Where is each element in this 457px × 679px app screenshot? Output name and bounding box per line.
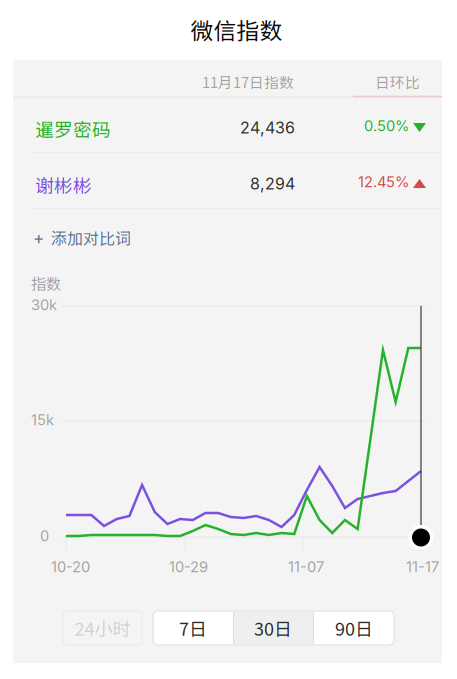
- staticText: 30日: [254, 615, 292, 641]
- staticText: 24,436: [240, 118, 295, 137]
- staticText: 11-07: [288, 558, 324, 576]
- staticText: 0: [40, 527, 49, 545]
- staticText: 24小时: [74, 615, 130, 641]
- staticText: 11-17: [406, 558, 439, 576]
- button[interactable]: 谢彬彬: [13, 153, 442, 208]
- button[interactable]: 24小时: [63, 611, 142, 645]
- button[interactable]: +: [13, 215, 442, 260]
- staticText: 10-29: [169, 558, 208, 576]
- staticText: 0.50%: [364, 117, 409, 135]
- staticText: 10-20: [51, 558, 90, 576]
- staticText: 15k: [31, 411, 54, 429]
- button[interactable]: 30日: [233, 611, 313, 645]
- button[interactable]: 7日: [153, 611, 233, 645]
- staticText: 12.45%: [358, 173, 409, 191]
- staticText: +: [33, 227, 44, 248]
- staticText: 90日: [335, 615, 373, 641]
- staticText: 暹罗密码: [35, 115, 111, 142]
- staticText: 微信指数: [190, 13, 282, 46]
- button[interactable]: 暹罗密码: [13, 98, 442, 152]
- staticText: 11月17日指数: [202, 71, 294, 92]
- staticText: 30k: [31, 296, 57, 314]
- staticText: 8,294: [250, 174, 295, 193]
- staticText: 谢彬彬: [35, 171, 92, 198]
- staticText: 指数: [31, 272, 61, 294]
- button[interactable]: 90日: [314, 611, 394, 645]
- staticText: 日环比: [375, 71, 420, 92]
- staticText: 7日: [179, 615, 207, 641]
- staticText: 添加对比词: [51, 226, 131, 249]
